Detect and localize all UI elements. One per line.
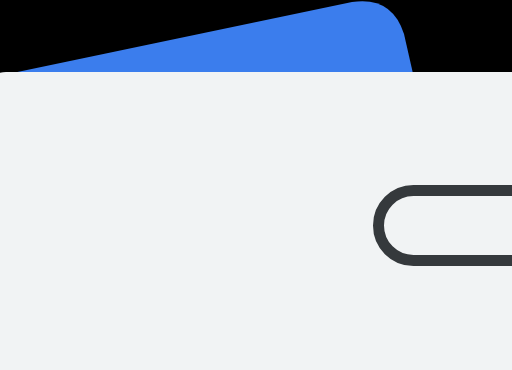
button[interactable]: Wallet [0, 0, 512, 370]
